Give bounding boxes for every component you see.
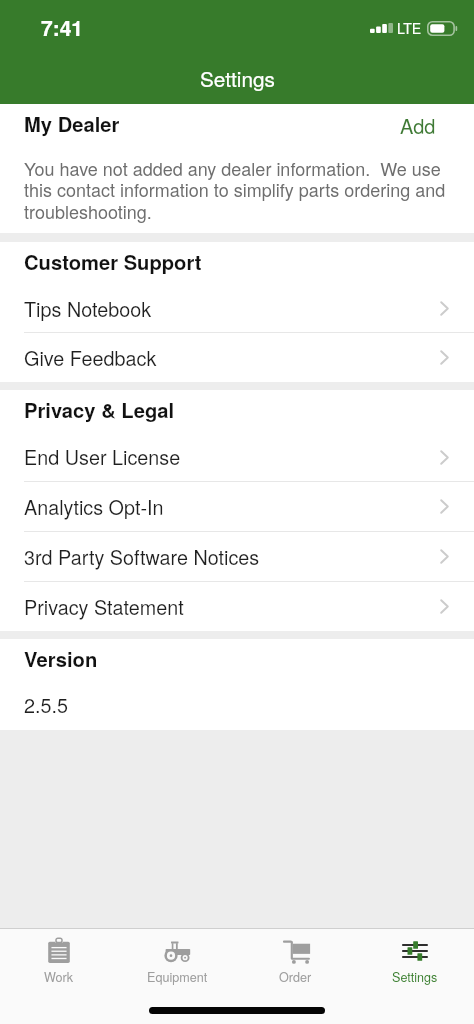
button[interactable]: Order bbox=[236, 929, 355, 990]
staticText: Order bbox=[279, 968, 312, 986]
button[interactable]: Give Feedback bbox=[0, 333, 474, 382]
staticText: 7:41 bbox=[41, 12, 84, 42]
staticText: Privacy Statement bbox=[24, 592, 440, 620]
staticText: 3rd Party Software Notices bbox=[24, 542, 440, 570]
staticText: Tips Notebook bbox=[24, 294, 440, 322]
button[interactable]: Work bbox=[0, 929, 118, 990]
button[interactable]: Equipment bbox=[118, 929, 236, 990]
staticText: Privacy & Legal bbox=[24, 395, 175, 424]
button[interactable]: End User License bbox=[0, 433, 474, 481]
staticText: My Dealer bbox=[24, 109, 120, 138]
button[interactable]: 3rd Party Software Notices bbox=[0, 532, 474, 581]
staticText: 2.5.5 bbox=[24, 690, 69, 718]
button[interactable]: Tips Notebook bbox=[0, 285, 474, 332]
staticText: Give Feedback bbox=[24, 343, 440, 371]
button[interactable]: Add bbox=[384, 104, 474, 147]
staticText: Version bbox=[24, 644, 98, 673]
button[interactable]: Privacy Statement bbox=[0, 582, 474, 631]
staticText: Customer Support bbox=[24, 247, 202, 276]
staticText: Settings bbox=[392, 968, 438, 986]
staticText: Analytics Opt-In bbox=[24, 492, 440, 520]
button[interactable]: Analytics Opt-In bbox=[0, 482, 474, 531]
staticText: Work bbox=[44, 968, 74, 986]
staticText: You have not added any dealer informatio… bbox=[24, 155, 453, 224]
button[interactable]: Settings bbox=[355, 929, 474, 990]
staticText: End User License bbox=[24, 442, 440, 470]
staticText: LTE bbox=[397, 18, 422, 38]
staticText: Equipment bbox=[147, 968, 208, 986]
staticText: Settings bbox=[200, 63, 275, 93]
staticText: Add bbox=[400, 111, 436, 140]
